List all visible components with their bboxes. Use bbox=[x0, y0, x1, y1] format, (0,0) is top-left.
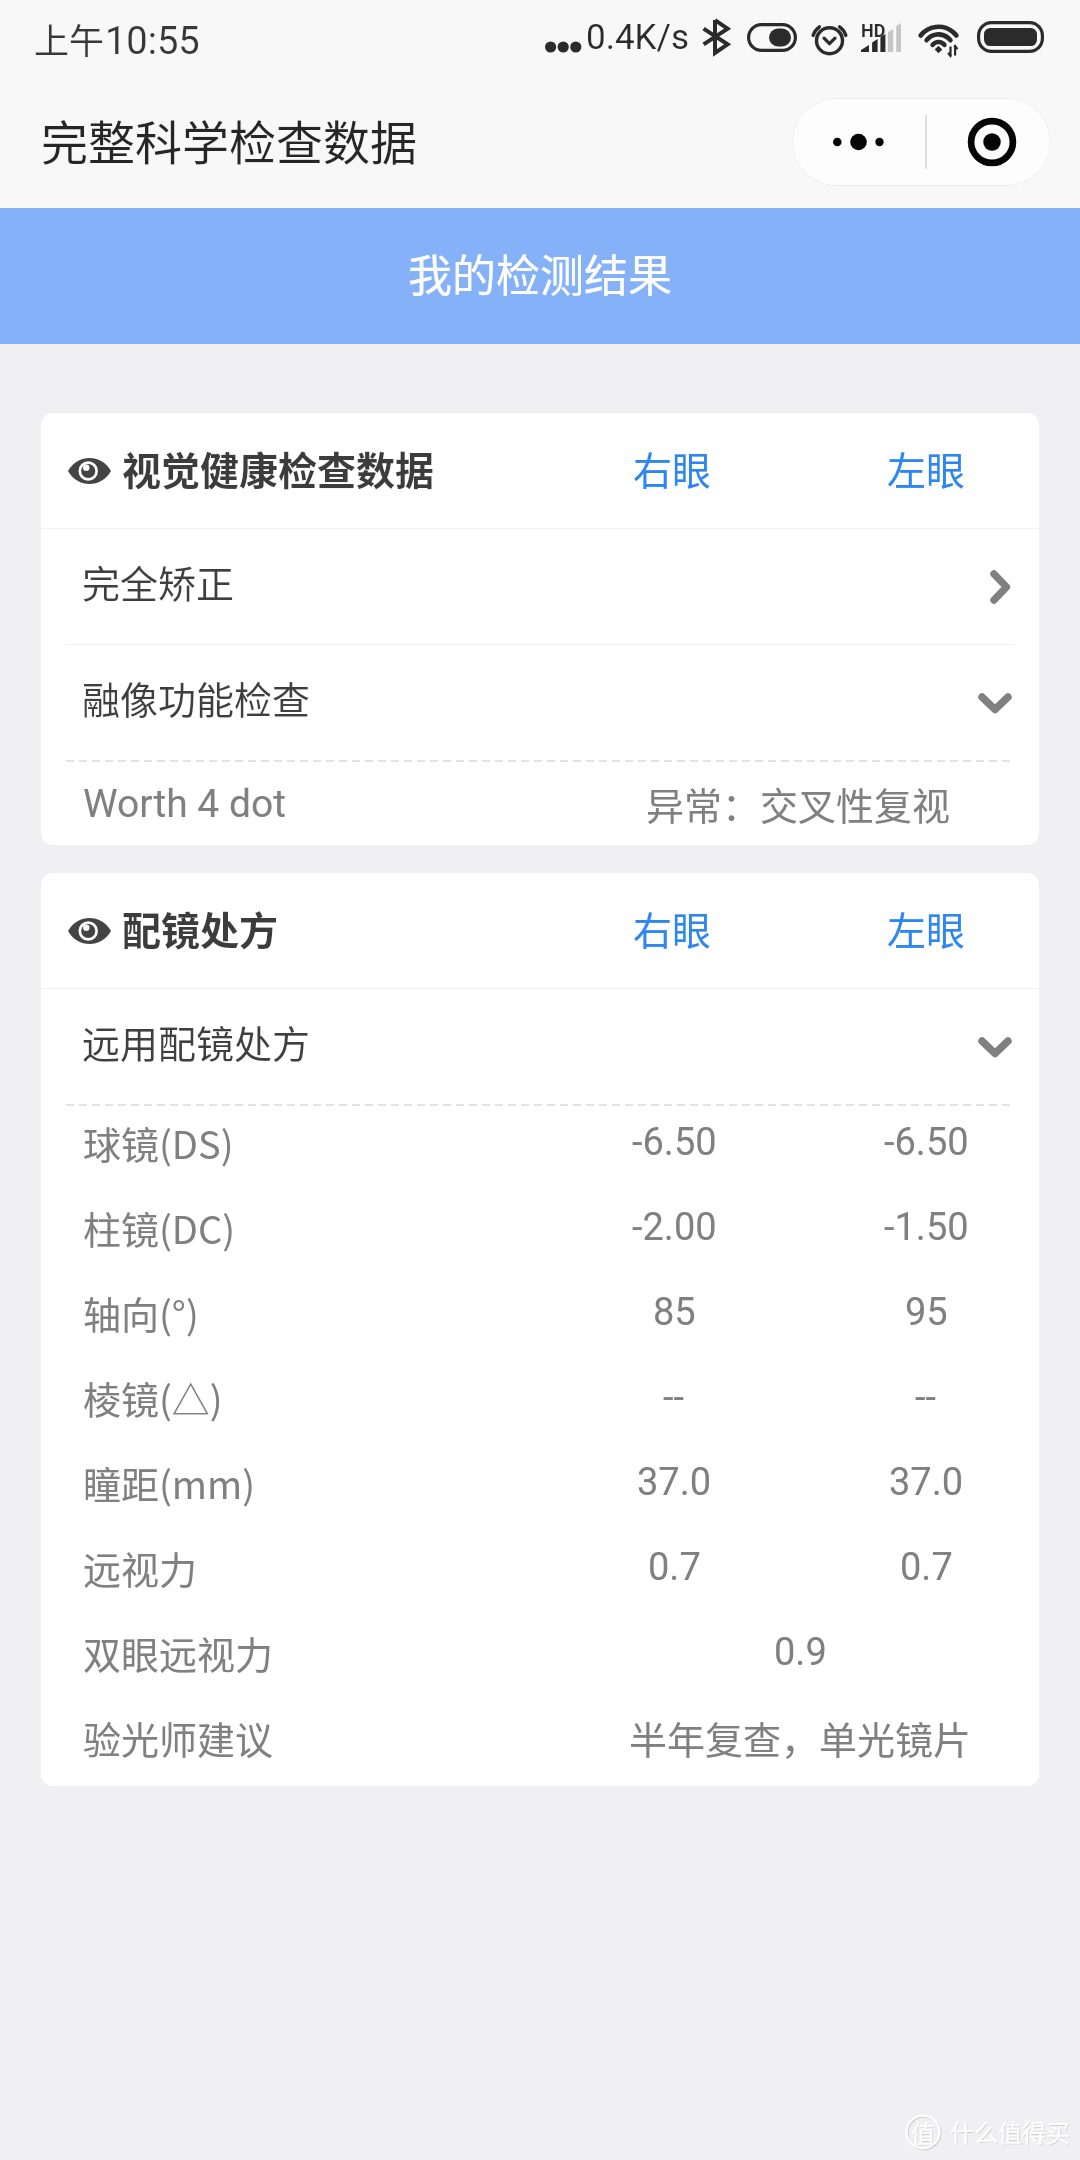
staticText: -1.50 bbox=[884, 1205, 969, 1250]
button[interactable]: 融像功能检查 bbox=[41, 645, 1039, 760]
staticText: 配镜处方 bbox=[122, 900, 279, 956]
staticText: HD bbox=[861, 20, 886, 41]
staticText: 半年复查，单光镜片 bbox=[629, 1710, 972, 1765]
staticText: -2.00 bbox=[632, 1205, 717, 1250]
button[interactable]: 远用配镜处方 bbox=[41, 989, 1039, 1104]
staticText: 什么值得买 bbox=[950, 2114, 1070, 2149]
staticText: 37.0 bbox=[889, 1460, 964, 1505]
staticText: 10:55 bbox=[105, 19, 200, 64]
staticText: 球镜(DS) bbox=[83, 1115, 234, 1170]
staticText: 双眼远视力 bbox=[83, 1625, 274, 1680]
staticText: -6.50 bbox=[884, 1120, 969, 1165]
staticText: 完全矫正 bbox=[82, 554, 235, 609]
staticText: Worth 4 dot bbox=[83, 781, 286, 827]
staticText: 37.0 bbox=[637, 1460, 712, 1505]
staticText: -- bbox=[663, 1375, 685, 1420]
staticText: 值 bbox=[911, 2115, 935, 2149]
staticText: 我的检测结果 bbox=[408, 241, 672, 305]
staticText: 0.4K/s bbox=[586, 17, 690, 58]
button[interactable]: 完全矫正 bbox=[41, 529, 1039, 644]
staticText: 85 bbox=[653, 1290, 696, 1335]
staticText: 右眼 bbox=[633, 900, 712, 956]
staticText: 棱镜(△) bbox=[83, 1370, 223, 1425]
staticText: 轴向(°) bbox=[83, 1285, 199, 1340]
staticText: 左眼 bbox=[887, 900, 966, 956]
staticText: 视觉健康检查数据 bbox=[122, 440, 435, 496]
staticText: 什么值得买 bbox=[951, 2115, 1071, 2150]
staticText: 95 bbox=[905, 1290, 948, 1335]
staticText: -- bbox=[915, 1375, 937, 1420]
staticText: 远视力 bbox=[83, 1540, 198, 1595]
staticText: 左眼 bbox=[887, 440, 966, 496]
staticText: 远用配镜处方 bbox=[82, 1014, 311, 1069]
staticText: 0.7 bbox=[900, 1545, 953, 1590]
staticText: 瞳距(mm) bbox=[83, 1455, 256, 1510]
staticText: 值 bbox=[912, 2116, 936, 2149]
staticText: 融像功能检查 bbox=[82, 670, 311, 725]
staticText: 完整科学检查数据 bbox=[41, 105, 417, 173]
staticText: 上午 bbox=[34, 13, 105, 64]
staticText: 异常：交叉性复视 bbox=[646, 776, 951, 831]
staticText: 0.7 bbox=[648, 1545, 701, 1590]
staticText: -6.50 bbox=[632, 1120, 717, 1165]
button[interactable]: More options bbox=[792, 98, 925, 186]
staticText: 柱镜(DC) bbox=[83, 1200, 236, 1255]
staticText: 验光师建议 bbox=[83, 1710, 274, 1765]
staticText: 右眼 bbox=[633, 440, 712, 496]
button[interactable]: Close mini program bbox=[927, 98, 1051, 186]
staticText: 0.9 bbox=[774, 1630, 827, 1675]
